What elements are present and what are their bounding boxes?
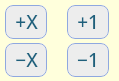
staticText: −1: [77, 47, 99, 73]
staticText: −X: [15, 47, 38, 73]
button[interactable]: −1: [67, 43, 109, 77]
staticText: +1: [77, 9, 99, 35]
staticText: +X: [15, 9, 38, 35]
button[interactable]: −X: [5, 43, 47, 77]
button[interactable]: +X: [5, 5, 47, 39]
button[interactable]: +1: [67, 5, 109, 39]
